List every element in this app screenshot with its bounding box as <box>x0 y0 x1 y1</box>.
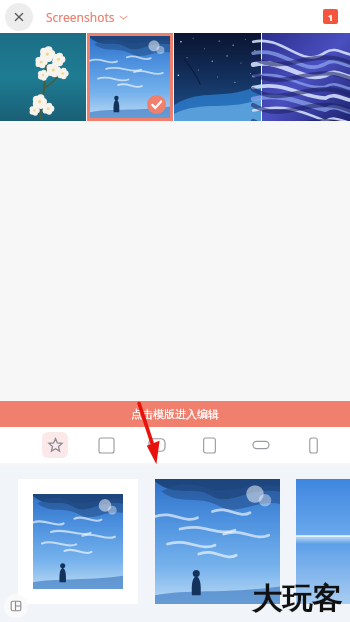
button[interactable]: Layout options <box>4 594 28 618</box>
staticText: 大玩客 <box>252 580 342 618</box>
button[interactable]: 点击模版进入编辑 <box>0 401 350 427</box>
staticText: 点击模版进入编辑 <box>131 407 219 421</box>
button[interactable]: Tall ratio <box>300 432 326 458</box>
button[interactable]: Favorites <box>42 432 68 458</box>
button[interactable]: Screenshots <box>46 9 128 25</box>
button[interactable]: Landscape ratio <box>144 432 170 458</box>
button[interactable]: Portrait ratio <box>196 432 222 458</box>
staticText: 1 <box>328 11 334 23</box>
button[interactable]: Square ratio <box>93 432 119 458</box>
button[interactable]: Selected count 1 <box>323 9 338 24</box>
button[interactable] <box>90 36 170 118</box>
button[interactable] <box>0 33 86 121</box>
staticText: Screenshots <box>46 9 115 25</box>
button[interactable] <box>296 479 350 604</box>
button[interactable] <box>18 479 138 604</box>
button[interactable] <box>155 479 280 604</box>
button[interactable] <box>262 33 350 121</box>
button[interactable] <box>174 33 261 121</box>
button[interactable]: Close <box>5 3 33 31</box>
button[interactable]: Wide ratio <box>248 432 274 458</box>
